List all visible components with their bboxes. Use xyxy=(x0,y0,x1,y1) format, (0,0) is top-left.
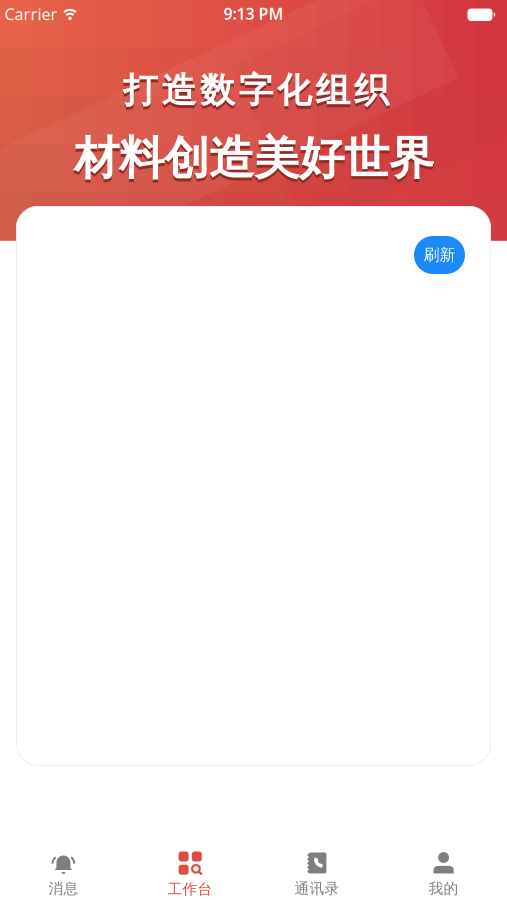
staticText: 材料创造美好世界 xyxy=(74,134,434,189)
staticText: 消息 xyxy=(48,879,78,897)
staticText: 刷新 xyxy=(423,245,455,265)
staticText: 9:13 PM xyxy=(223,3,283,24)
staticText: Carrier xyxy=(4,3,57,25)
button[interactable]: 刷新 xyxy=(414,236,465,274)
staticText: 打造数字化组织 xyxy=(123,72,389,115)
staticText: 打造数字化组织 xyxy=(123,69,389,112)
staticText: 我的 xyxy=(429,879,459,897)
staticText: 材料创造美好世界 xyxy=(74,131,434,186)
button[interactable]: 我的 xyxy=(381,842,507,900)
staticText: 通讯录 xyxy=(294,879,339,897)
button[interactable]: 工作台 xyxy=(127,842,253,900)
button[interactable]: 消息 xyxy=(0,842,126,900)
staticText: 工作台 xyxy=(168,880,213,898)
button[interactable]: 通讯录 xyxy=(254,842,380,900)
